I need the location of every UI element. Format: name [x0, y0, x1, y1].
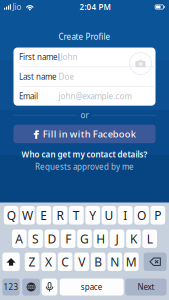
button[interactable]: space	[60, 278, 124, 295]
button[interactable]: O	[134, 206, 149, 224]
staticText: Requests approved by me	[35, 161, 134, 172]
button[interactable]: M	[124, 252, 139, 271]
button[interactable]: R	[53, 206, 67, 224]
staticText: 2:04 PM	[79, 2, 110, 12]
button[interactable]: T	[69, 206, 84, 224]
staticText: Who can get my contact details?	[21, 149, 147, 160]
staticText: T	[73, 207, 80, 223]
button[interactable]: Fill in with Facebook	[13, 125, 155, 143]
staticText: John	[61, 52, 78, 62]
button[interactable]: Next	[125, 278, 167, 295]
button[interactable]: U	[102, 206, 116, 224]
staticText: L	[147, 231, 153, 247]
button[interactable]: Who can get my contact details?	[21, 149, 147, 160]
staticText: O	[137, 207, 146, 223]
staticText: K	[130, 231, 137, 247]
staticText: D	[47, 231, 56, 247]
staticText: A	[15, 231, 23, 247]
staticText: S	[32, 231, 39, 247]
staticText: Jio	[13, 2, 22, 12]
staticText: Q	[7, 207, 16, 223]
staticText: V	[78, 254, 85, 270]
staticText: F	[65, 231, 71, 247]
button[interactable]: J	[110, 229, 124, 248]
staticText: john@example.com	[58, 91, 131, 101]
button[interactable]: S	[28, 229, 43, 248]
button[interactable]: I	[118, 206, 133, 224]
button[interactable]: Add profile photo	[128, 51, 152, 75]
staticText: Last name	[19, 71, 57, 82]
staticText: M	[126, 254, 137, 270]
staticText: P	[154, 207, 161, 223]
button[interactable]: Shift	[2, 252, 20, 271]
staticText: Y	[89, 207, 96, 223]
staticText: space	[81, 282, 103, 292]
button[interactable]: 123	[2, 278, 20, 295]
staticText: B	[94, 254, 102, 270]
button[interactable]: C	[58, 252, 72, 271]
staticText: U	[104, 207, 113, 223]
staticText: E	[40, 207, 47, 223]
button[interactable]: D	[45, 229, 59, 248]
staticText: Z	[29, 254, 36, 270]
button[interactable]: F	[61, 229, 75, 248]
button[interactable]: A	[12, 229, 27, 248]
button[interactable]: V	[74, 252, 89, 271]
staticText: W	[22, 207, 33, 223]
staticText: R	[57, 207, 64, 223]
staticText: Email	[19, 91, 38, 101]
staticText: I	[123, 207, 127, 223]
staticText: J	[116, 231, 119, 247]
staticText: or	[80, 110, 88, 120]
button[interactable]: P	[151, 206, 165, 224]
staticText: 123	[3, 282, 18, 292]
button[interactable]: K	[126, 229, 141, 248]
button[interactable]: L	[142, 229, 157, 248]
button[interactable]: H	[93, 229, 108, 248]
staticText: Create Profile	[58, 31, 110, 42]
button[interactable]: Next keyboard	[22, 278, 40, 295]
button[interactable]: Y	[85, 206, 100, 224]
staticText: Fill in with Facebook	[43, 128, 136, 140]
staticText: First name	[19, 52, 58, 62]
staticText: Next	[137, 282, 154, 292]
button[interactable]: B	[91, 252, 106, 271]
button[interactable]: Dictate	[42, 278, 57, 295]
staticText: H	[96, 231, 105, 247]
staticText: G	[80, 231, 89, 247]
button[interactable]: N	[107, 252, 122, 271]
staticText: Doe	[58, 71, 74, 82]
button[interactable]: Z	[25, 252, 39, 271]
staticText: X	[45, 254, 52, 270]
staticText: N	[110, 254, 119, 270]
button[interactable]: W	[20, 206, 35, 224]
staticText: C	[61, 254, 69, 270]
button[interactable]: Q	[4, 206, 18, 224]
button[interactable]: Delete	[144, 252, 167, 271]
button[interactable]: E	[36, 206, 51, 224]
button[interactable]: X	[41, 252, 56, 271]
button[interactable]: G	[77, 229, 92, 248]
